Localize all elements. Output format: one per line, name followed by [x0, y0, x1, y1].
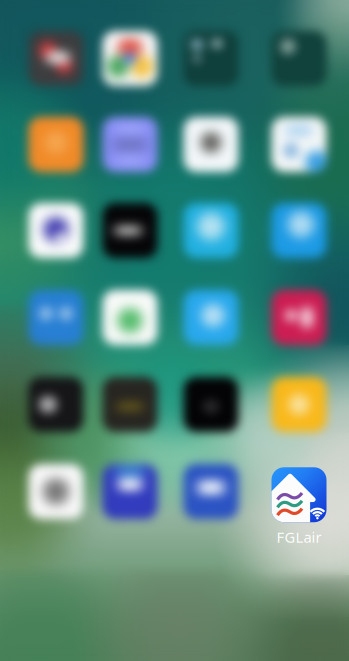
- staticText: FGLair: [276, 527, 321, 547]
- button[interactable]: FGLair: [259, 467, 339, 547]
